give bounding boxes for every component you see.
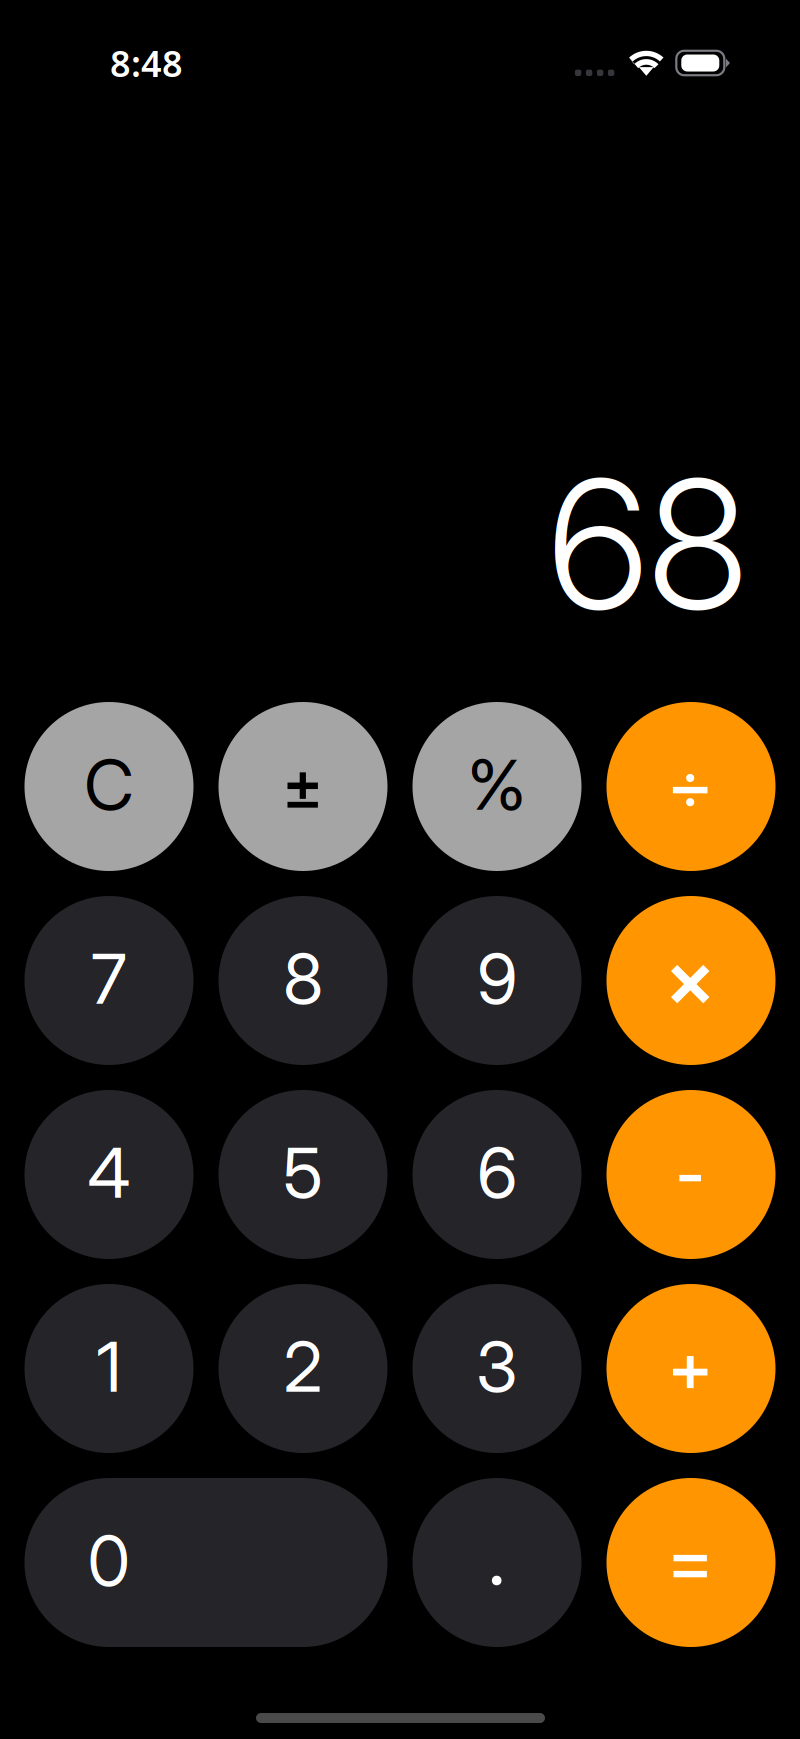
button[interactable]: 8 — [218, 896, 387, 1065]
staticText: 9 — [477, 937, 517, 1020]
button[interactable]: Plus — [606, 1284, 775, 1453]
button[interactable]: Divide — [606, 702, 775, 871]
staticText: 6 — [477, 1131, 517, 1214]
button[interactable]: 2 — [218, 1284, 387, 1453]
button[interactable]: 7 — [24, 896, 193, 1065]
button[interactable]: 4 — [24, 1090, 193, 1259]
button[interactable]: Minus — [606, 1090, 775, 1259]
button[interactable]: Multiply — [606, 896, 775, 1065]
staticText: 4 — [87, 1131, 130, 1214]
button[interactable]: 9 — [412, 896, 581, 1065]
staticText: 8 — [283, 937, 323, 1020]
button[interactable]: C — [24, 702, 193, 871]
staticText: 0 — [87, 1519, 130, 1602]
staticText: C — [84, 743, 134, 826]
button[interactable]: Plus minus — [218, 702, 387, 871]
button[interactable]: Equals — [606, 1478, 775, 1647]
staticText: 3 — [476, 1325, 518, 1408]
staticText: 5 — [283, 1131, 323, 1214]
staticText: 68 — [548, 437, 747, 651]
staticText: % — [467, 743, 526, 826]
button[interactable]: 1 — [24, 1284, 193, 1453]
staticText: 1 — [96, 1325, 121, 1408]
button[interactable]: 5 — [218, 1090, 387, 1259]
button[interactable]: Decimal point — [412, 1478, 581, 1647]
staticText: 2 — [283, 1325, 322, 1408]
button[interactable]: 6 — [412, 1090, 581, 1259]
staticText: 8:48 — [110, 39, 183, 87]
button[interactable]: % — [412, 702, 581, 871]
button[interactable]: 0 — [24, 1478, 387, 1647]
staticText: 7 — [91, 937, 127, 1020]
button[interactable]: 3 — [412, 1284, 581, 1453]
